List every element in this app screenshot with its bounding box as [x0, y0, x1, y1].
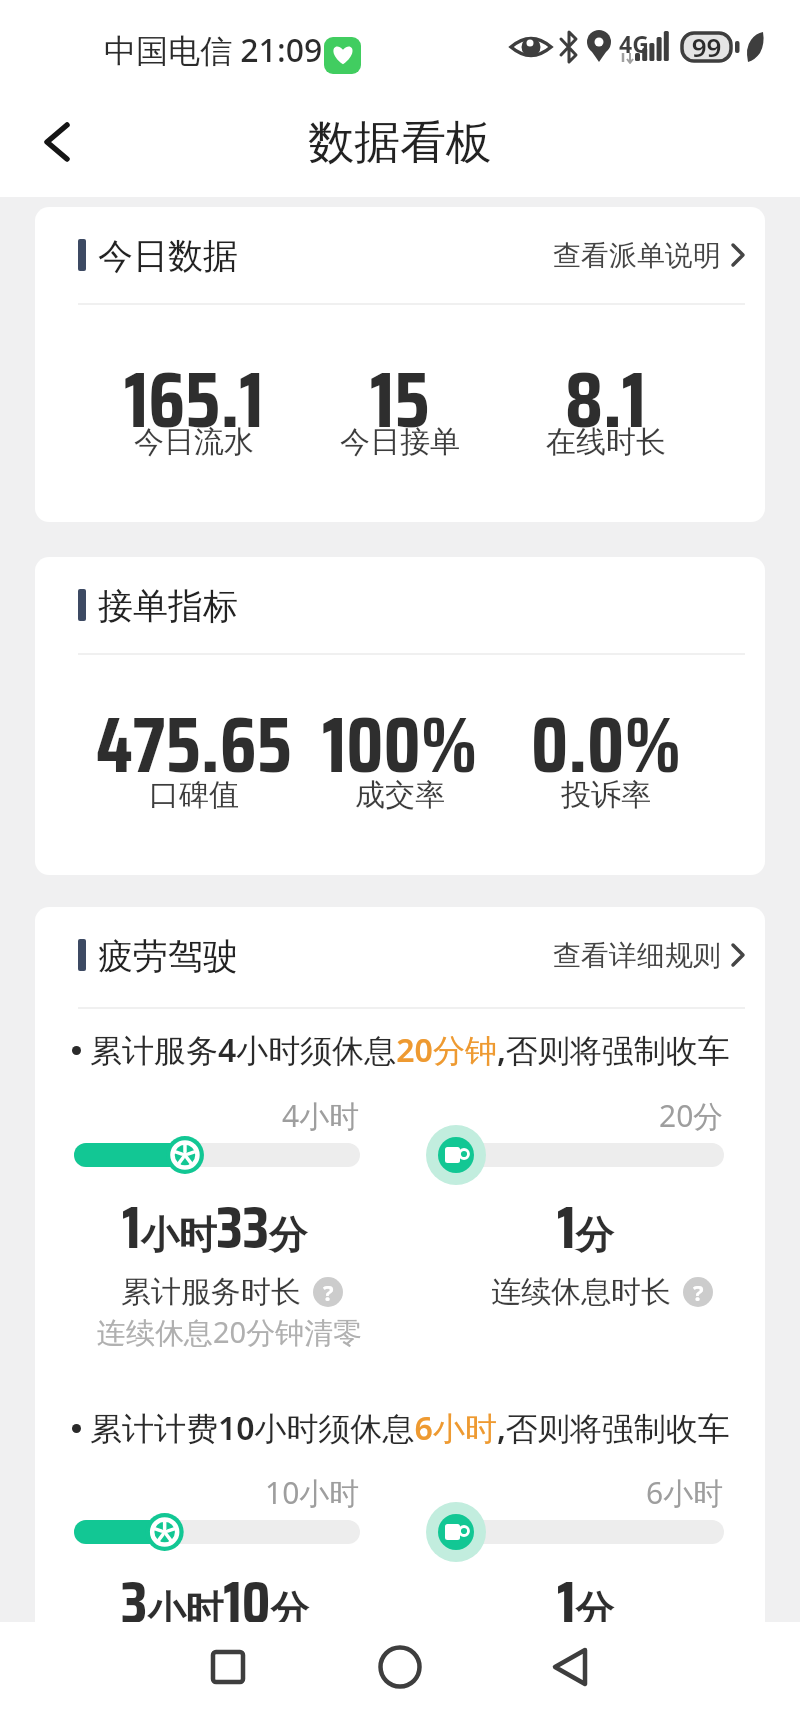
staticText: 10小时	[265, 1472, 360, 1513]
staticText: 查看详细规则	[553, 938, 721, 973]
staticText: 6小时	[646, 1472, 724, 1513]
staticText: 数据看板	[0, 114, 800, 172]
button[interactable]	[203, 1642, 253, 1692]
staticText: 疲劳驾驶	[98, 934, 238, 976]
staticText: 3小时10分	[121, 1555, 309, 1649]
staticText: 累计服务4小时须休息20分钟,否则将强制收车	[90, 1028, 730, 1072]
staticText: 成交率	[355, 776, 445, 814]
staticText: 0.0%	[531, 683, 682, 806]
staticText: 连续休息时长	[491, 1273, 671, 1311]
staticText: 165.1	[124, 338, 264, 461]
staticText: 1分	[557, 1180, 614, 1274]
staticText: 1分	[557, 1555, 614, 1649]
staticText: 接单指标	[98, 584, 238, 626]
staticText: ?	[693, 1277, 704, 1307]
button[interactable]	[545, 1642, 595, 1692]
button[interactable]: 查看派单说明	[553, 234, 745, 276]
button[interactable]: 查看详细规则	[553, 934, 745, 976]
staticText: 4小时	[282, 1095, 360, 1136]
staticText: 15	[370, 338, 430, 461]
staticText: 在线时长	[546, 423, 666, 461]
staticText: 投诉率	[561, 776, 651, 814]
staticText: 475.65	[96, 683, 292, 806]
staticText: 99	[682, 29, 731, 64]
staticText: ?	[323, 1277, 334, 1307]
staticText: 查看派单说明	[553, 238, 721, 273]
staticText: 4G	[619, 28, 649, 59]
staticText: 累计服务时长	[121, 1273, 301, 1311]
staticText: 连续休息20分钟清零	[97, 1312, 363, 1352]
staticText: 1小时33分	[122, 1180, 308, 1274]
staticText: 今日流水	[134, 423, 254, 461]
staticText: 中国电信 21:09	[104, 28, 323, 72]
staticText: 口碑值	[149, 776, 239, 814]
button[interactable]	[375, 1642, 425, 1692]
staticText: 今日接单	[340, 423, 460, 461]
button[interactable]	[25, 110, 89, 174]
button[interactable]: ?	[313, 1277, 343, 1307]
staticText: 累计计费10小时须休息6小时,否则将强制收车	[90, 1406, 730, 1450]
staticText: 8.1	[565, 338, 647, 461]
staticText: 20分	[659, 1095, 724, 1136]
button[interactable]: ?	[683, 1277, 713, 1307]
staticText: 100%	[322, 683, 478, 806]
staticText: 今日数据	[98, 234, 238, 276]
